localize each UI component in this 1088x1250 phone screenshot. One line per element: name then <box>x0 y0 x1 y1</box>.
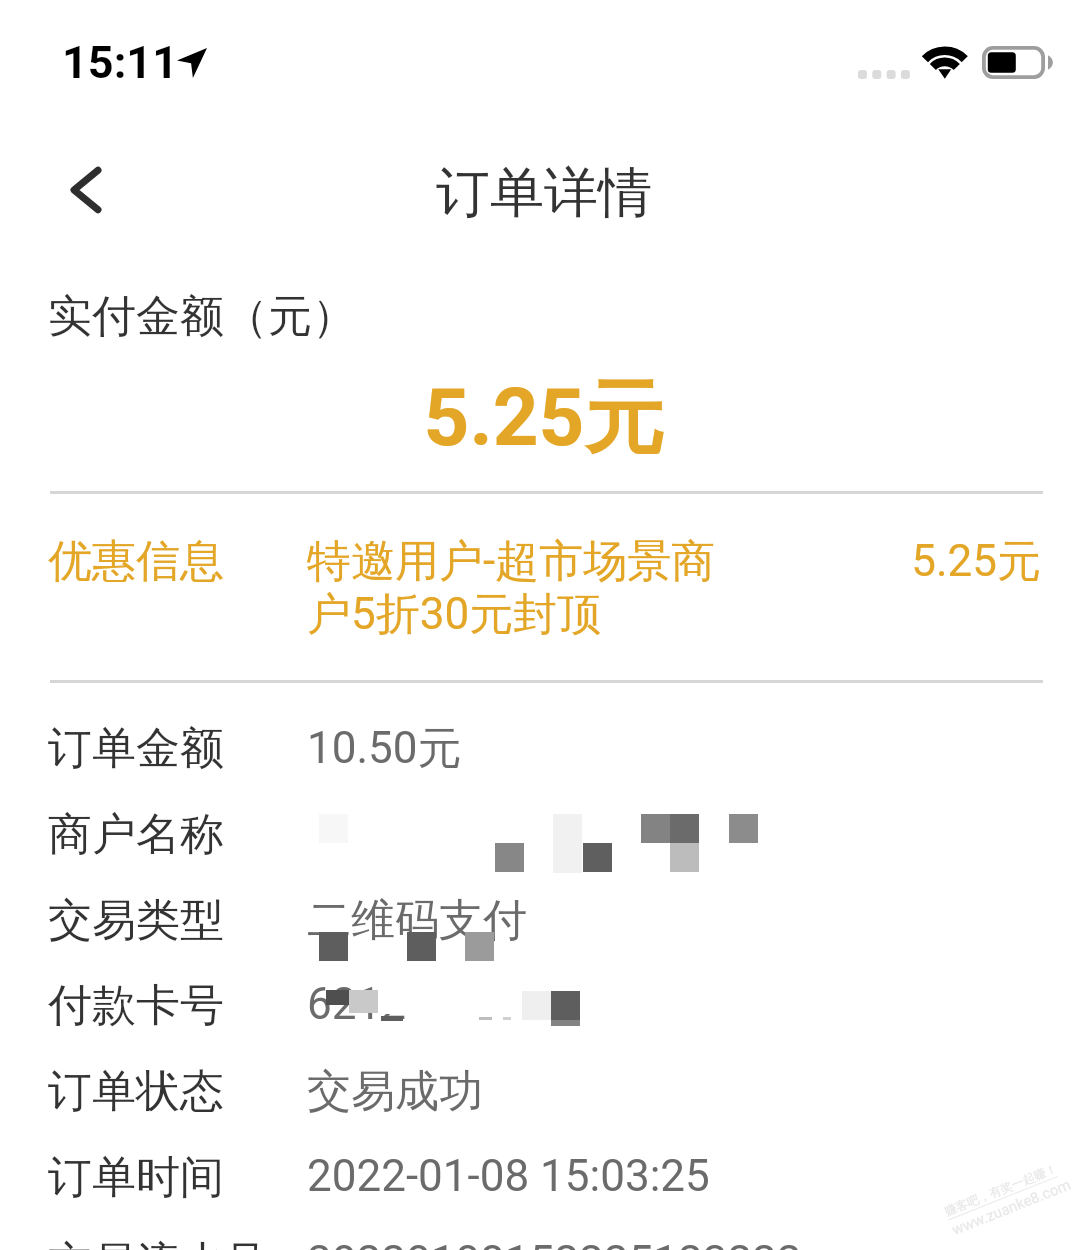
staticText: 20220108152225123222 <box>307 1236 802 1250</box>
staticText: 6212 <box>307 978 406 1030</box>
button[interactable]: 订单金额 <box>0 711 1088 797</box>
button[interactable]: 交易类型 <box>0 883 1088 969</box>
button[interactable]: 交易流水号 <box>0 1226 1088 1250</box>
staticText: www.zuanke8.com <box>949 1175 1074 1239</box>
staticText: 5.25元 <box>700 534 1041 589</box>
staticText: 10.50元 <box>307 721 462 776</box>
button[interactable]: 订单时间 <box>0 1140 1088 1226</box>
button[interactable]: 付款卡号 <box>0 968 1088 1054</box>
button[interactable]: 商户名称 <box>0 797 1088 883</box>
staticText: 商户名称 <box>48 807 224 862</box>
staticText: 5.25元 <box>0 368 1088 469</box>
staticText: 交易流水号 <box>48 1236 268 1250</box>
button[interactable]: 订单状态 <box>0 1054 1088 1140</box>
staticText: 交易成功 <box>307 1064 483 1119</box>
staticText: 订单时间 <box>48 1150 224 1205</box>
staticText: 2022-01-08 15:03:25 <box>307 1150 710 1202</box>
staticText: 订单金额 <box>48 721 224 776</box>
staticText: 优惠信息 <box>48 534 224 589</box>
button[interactable]: Back <box>36 140 136 240</box>
staticText: 赚客吧，有奖一起赚！ <box>942 1160 1059 1219</box>
staticText: 订单详情 <box>0 159 1088 227</box>
staticText: 二维码支付 <box>307 893 527 948</box>
staticText: 特邀用户-超市场景商户5折30元封顶 <box>307 534 732 642</box>
staticText: 付款卡号 <box>48 978 224 1033</box>
staticText: 交易类型 <box>48 893 224 948</box>
staticText: 15:11 <box>62 36 178 89</box>
staticText: 订单状态 <box>48 1064 224 1119</box>
staticText: 实付金额（元） <box>48 289 356 344</box>
